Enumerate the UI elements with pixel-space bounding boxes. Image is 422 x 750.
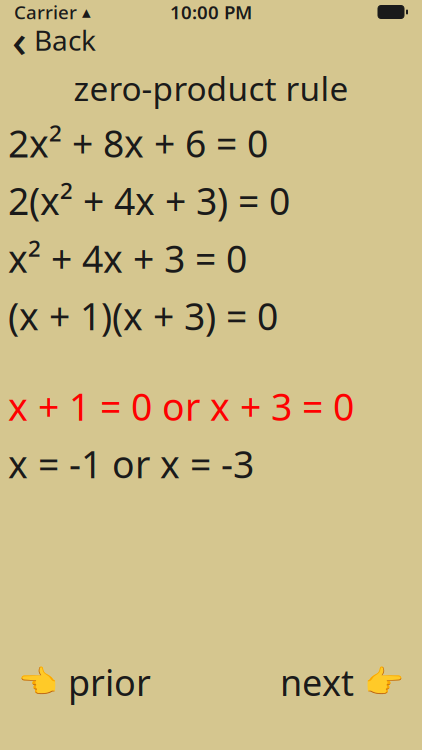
staticText: next bbox=[280, 658, 354, 706]
staticText: (x + 1)(x + 3) = 0 bbox=[8, 291, 278, 341]
staticText: ‹ bbox=[12, 10, 27, 70]
button[interactable]: ‹ bbox=[0, 8, 108, 72]
button[interactable]: 👈 bbox=[0, 650, 169, 714]
staticText: x = -1 or x = -3 bbox=[8, 439, 254, 488]
staticText: Carrier bbox=[14, 0, 77, 24]
staticText: Back bbox=[34, 21, 96, 59]
button[interactable]: next bbox=[262, 650, 422, 714]
staticText: 👈 bbox=[18, 664, 58, 700]
staticText: zero-product rule bbox=[73, 66, 348, 110]
staticText: 10:00 PM bbox=[170, 0, 252, 24]
staticText: 👉 bbox=[364, 664, 404, 700]
staticText: 2(x² + 4x + 3) = 0 bbox=[8, 176, 290, 225]
staticText: 2x² + 8x + 6 = 0 bbox=[8, 118, 268, 168]
staticText: prior bbox=[68, 658, 151, 706]
staticText: ▴ bbox=[82, 2, 91, 22]
staticText: x² + 4x + 3 = 0 bbox=[8, 233, 247, 283]
staticText: x + 1 = 0 or x + 3 = 0 bbox=[8, 381, 354, 431]
